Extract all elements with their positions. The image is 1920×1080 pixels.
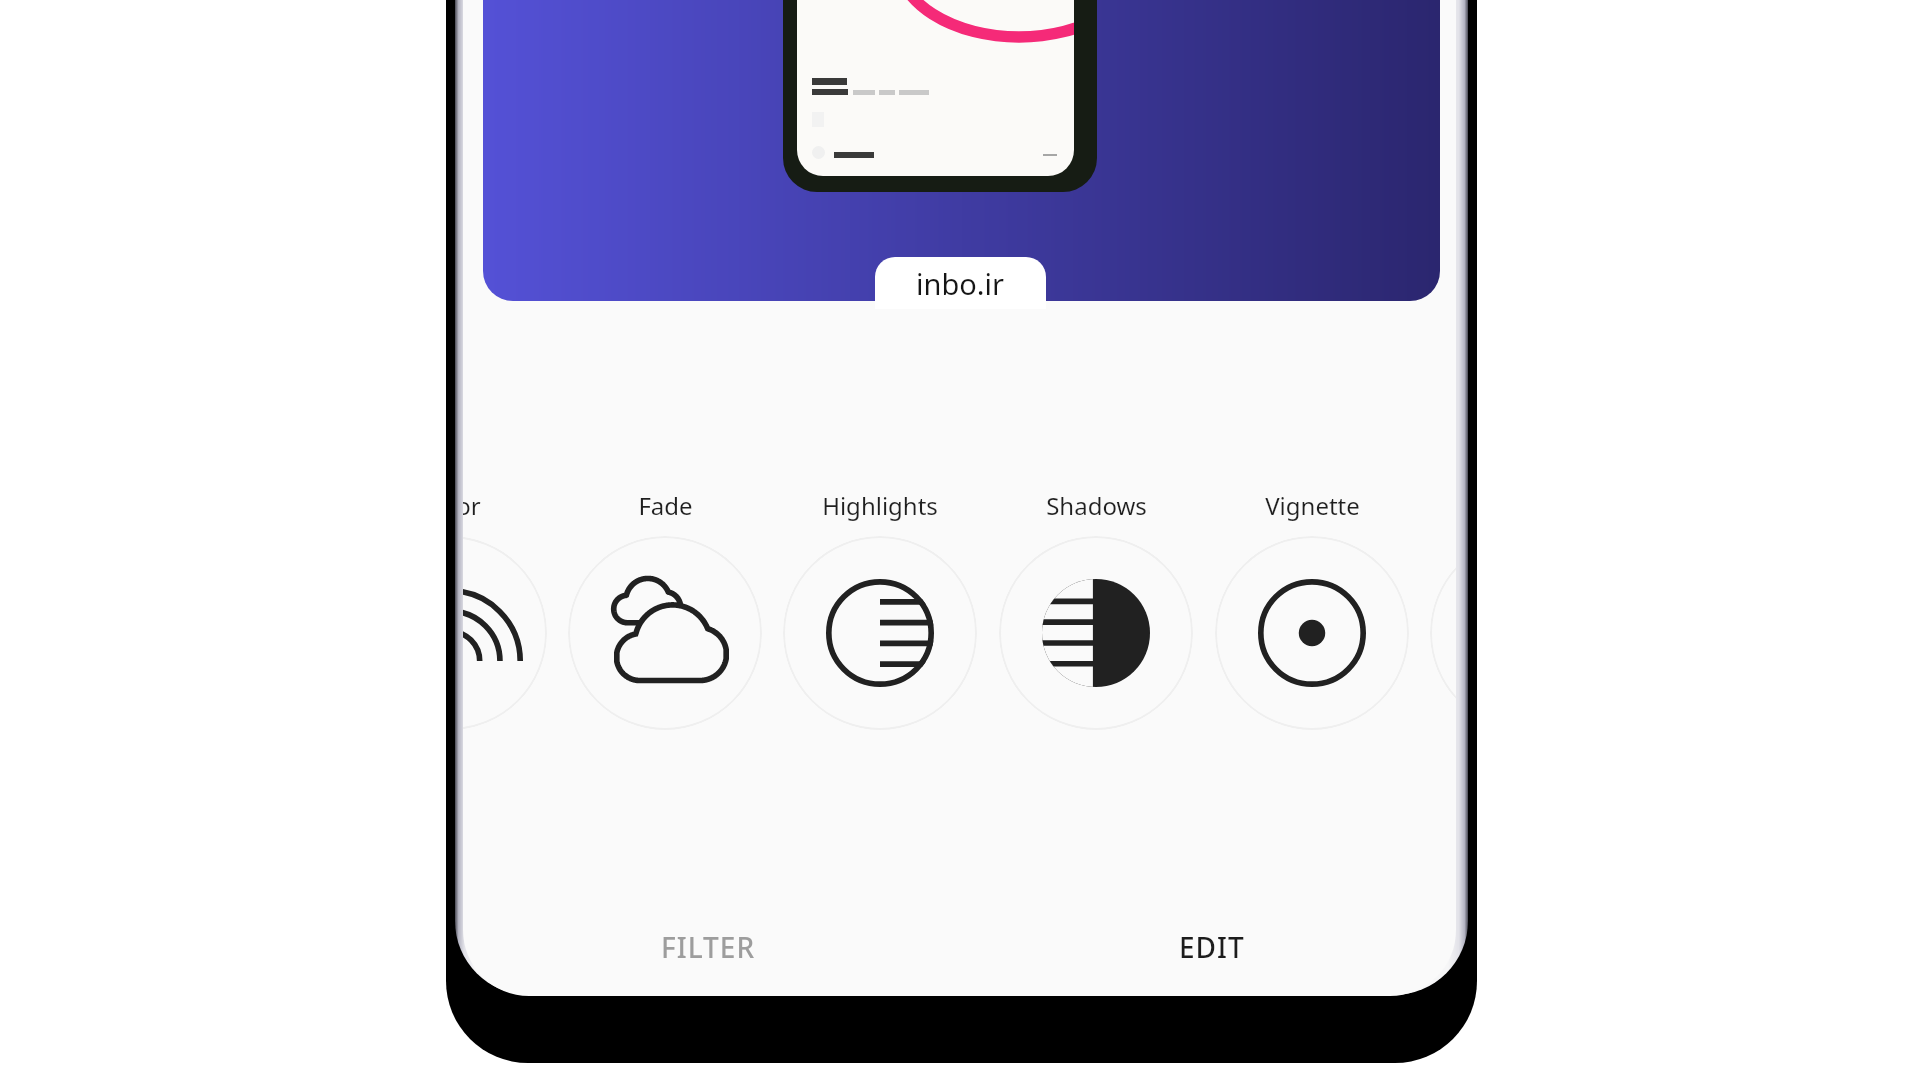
staticText: Vignette bbox=[1265, 489, 1360, 522]
staticText: Shadows bbox=[1046, 489, 1147, 522]
button[interactable]: Shadows bbox=[988, 489, 1204, 734]
staticText: EDIT bbox=[1179, 928, 1245, 966]
button[interactable]: Highlights bbox=[772, 489, 988, 734]
button[interactable]: EDIT bbox=[1092, 911, 1332, 983]
button[interactable]: FILTER bbox=[588, 911, 828, 983]
staticText: inbo.ir bbox=[916, 264, 1005, 303]
button[interactable]: Fade bbox=[557, 489, 773, 734]
staticText: FILTER bbox=[661, 928, 756, 966]
staticText: Color bbox=[463, 489, 481, 522]
button[interactable]: Vignette bbox=[1204, 489, 1420, 734]
staticText: Fade bbox=[638, 489, 693, 522]
button[interactable]: Color bbox=[463, 489, 558, 734]
staticText: Highlights bbox=[822, 489, 938, 522]
